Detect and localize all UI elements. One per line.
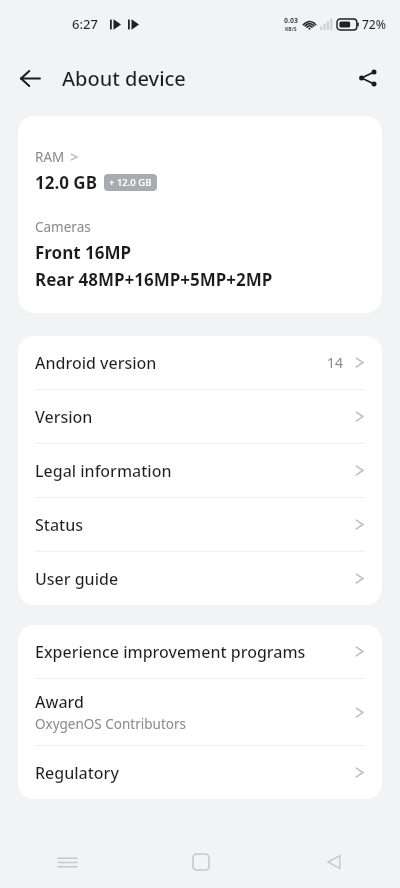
button[interactable]: User guide [18, 552, 382, 605]
staticText: Regulatory [35, 762, 119, 784]
staticText: Experience improvement programs [35, 641, 306, 663]
staticText: Status [35, 514, 84, 536]
staticText: Android version [35, 352, 157, 374]
staticText: Rear 48MP+16MP+5MP+2MP [35, 268, 273, 291]
staticText: 0.03 [284, 16, 298, 26]
staticText: Version [35, 406, 93, 428]
button[interactable]: Status [18, 498, 382, 551]
staticText: KB/S [285, 26, 297, 33]
staticText: User guide [35, 568, 119, 590]
button[interactable]: Experience improvement programs [18, 625, 382, 678]
staticText: Cameras [35, 218, 91, 236]
button[interactable]: Award [18, 679, 382, 745]
staticText: About device [62, 65, 186, 92]
staticText: 12.0 GB [35, 171, 97, 194]
button[interactable]: Legal information [18, 444, 382, 497]
staticText: Award [35, 691, 84, 713]
button[interactable]: Back [8, 56, 52, 100]
staticText: Legal information [35, 460, 172, 482]
button[interactable]: Back [267, 836, 400, 888]
button[interactable]: RAM [35, 148, 79, 166]
staticText: + 12.0 GB [109, 176, 152, 189]
staticText: Front 16MP [35, 241, 132, 264]
button[interactable]: Share [346, 56, 390, 100]
button[interactable]: Recents [134, 836, 267, 888]
button[interactable]: Regulatory [18, 746, 382, 799]
button[interactable]: Version [18, 390, 382, 443]
staticText: 72% [362, 16, 386, 32]
staticText: OxygenOS Contributors [35, 715, 186, 733]
button[interactable]: Menu [0, 836, 134, 888]
staticText: RAM [35, 148, 65, 166]
staticText: 14 [327, 353, 344, 372]
button[interactable]: Android version [18, 336, 382, 389]
staticText: 6:27 [72, 15, 98, 33]
